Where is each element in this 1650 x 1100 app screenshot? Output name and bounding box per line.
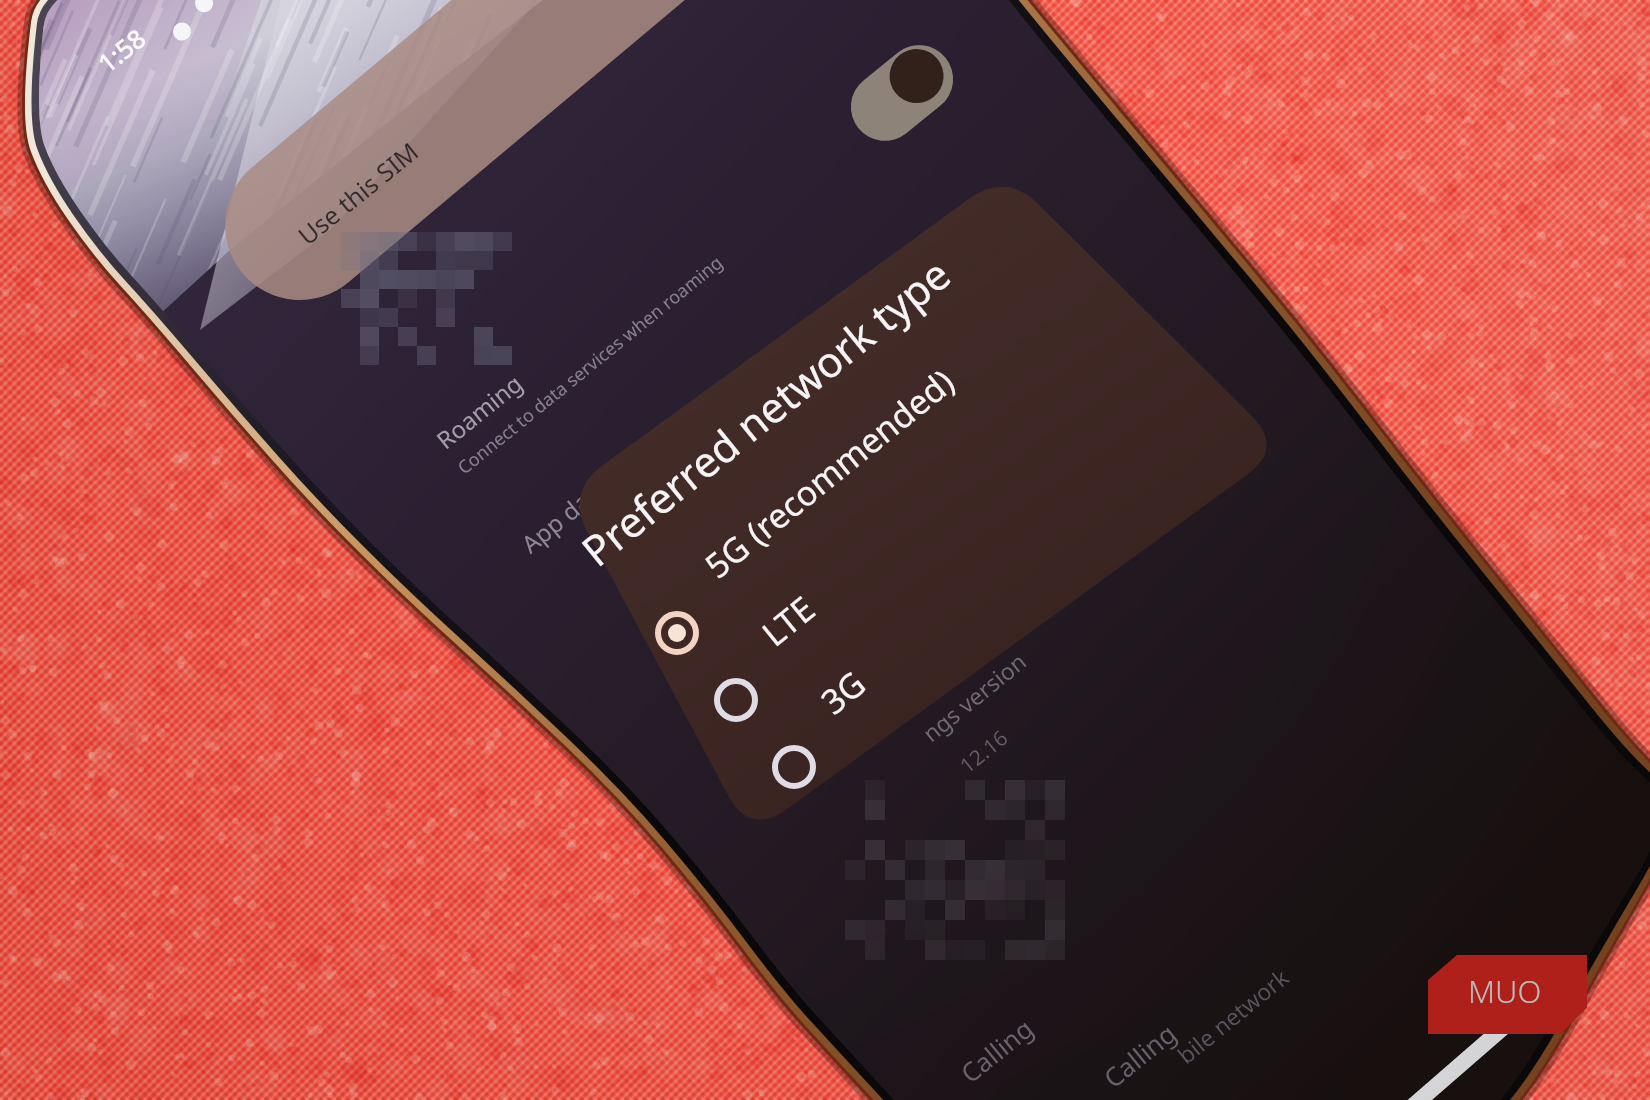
button[interactable]: MUO watermark (1428, 955, 1588, 1035)
button[interactable]: Use this SIM toggle (846, 57, 958, 129)
button[interactable]: 3G (756, 696, 1186, 782)
button[interactable]: 5G (recommended) (640, 560, 1070, 646)
button[interactable]: LTE (698, 628, 1128, 714)
